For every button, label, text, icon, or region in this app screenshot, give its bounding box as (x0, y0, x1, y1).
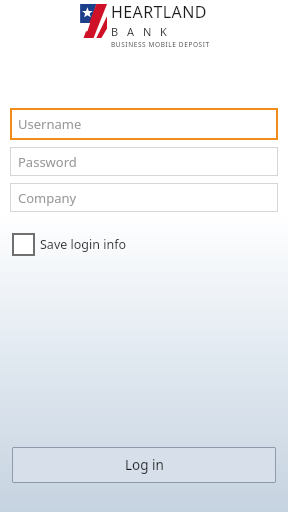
button[interactable]: Company (10, 183, 278, 212)
staticText: Password (18, 153, 77, 171)
button[interactable]: Log in (12, 447, 276, 483)
button[interactable]: Password (10, 147, 278, 176)
button[interactable]: Username (10, 108, 278, 140)
staticText: BUSINESS MOBILE DEPOSIT (111, 40, 210, 49)
staticText: Log in (125, 456, 164, 474)
button[interactable]: Save login info (12, 231, 135, 258)
staticText: Save login info (40, 236, 127, 253)
staticText: Company (18, 189, 77, 207)
staticText: B A N K (111, 24, 170, 39)
staticText: Username (18, 115, 82, 133)
staticText: HEARTLAND (111, 1, 207, 23)
other: Heartland Bank logo (79, 4, 107, 38)
